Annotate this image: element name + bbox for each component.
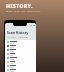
button[interactable]: [5, 68, 36, 72]
button[interactable]: [5, 48, 36, 52]
button[interactable]: [5, 60, 36, 64]
staticText: 142 items · this month: [7, 36, 28, 39]
button[interactable]: [5, 64, 36, 68]
button[interactable]: [5, 44, 36, 48]
staticText: HISTORY.: [6, 2, 33, 9]
button[interactable]: [5, 40, 36, 44]
staticText: EVERY SCAN YOU EVER MADE: [6, 10, 41, 13]
button[interactable]: [5, 52, 36, 56]
button[interactable]: [5, 56, 36, 60]
staticText: Scan History: [7, 30, 29, 35]
